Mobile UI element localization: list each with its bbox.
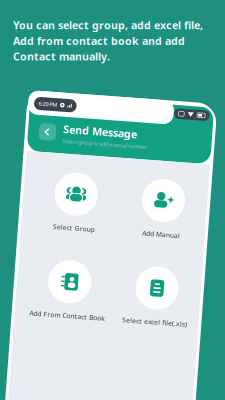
button[interactable]: Select Group: [26, 175, 114, 235]
button[interactable]: Select excel file(.xls): [114, 263, 201, 323]
staticText: Contact manually.: [13, 49, 110, 63]
staticText: Add From Contact Book: [32, 314, 108, 323]
staticText: Select group or add manual number: [52, 141, 137, 148]
button[interactable]: Add From Contact Book: [26, 263, 114, 323]
staticText: Select Group: [49, 226, 91, 235]
button[interactable]: Back: [28, 128, 45, 145]
staticText: Select excel file(.xls): [125, 314, 190, 323]
staticText: 6:20 PM: [26, 105, 45, 113]
staticText: Add from contact book and add: [13, 34, 185, 48]
staticText: You can select group, add excel file,: [13, 18, 203, 32]
staticText: Send Message: [52, 125, 126, 140]
staticText: Add Manual: [138, 226, 176, 235]
button[interactable]: Add Manual: [114, 175, 201, 235]
